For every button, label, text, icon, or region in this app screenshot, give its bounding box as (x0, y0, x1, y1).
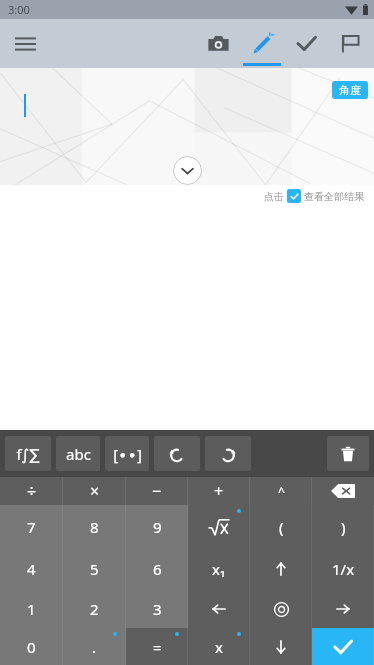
button[interactable]: Expand (173, 156, 202, 185)
staticText: 1/x (332, 559, 355, 579)
button[interactable]: Backspace (312, 477, 374, 505)
button[interactable]: Submit (312, 628, 374, 665)
button[interactable]: + (188, 477, 250, 505)
button[interactable]: Delete all (327, 436, 369, 471)
button[interactable]: 3 (126, 590, 188, 628)
staticText: 点击 (264, 190, 284, 203)
button[interactable]: 7 (0, 505, 63, 548)
button[interactable]: 2 (63, 590, 126, 628)
staticText: ÷ (27, 480, 37, 502)
staticText: 1 (27, 599, 36, 619)
button[interactable]: Up (250, 548, 312, 590)
button[interactable]: Undo (154, 436, 200, 471)
staticText: ^ (278, 483, 285, 499)
button[interactable]: abc (56, 436, 100, 471)
staticText: 7 (27, 517, 36, 537)
button[interactable]: Confirm (284, 19, 328, 68)
button[interactable]: Flag (328, 19, 372, 68)
staticText: [∙∙] (113, 444, 142, 464)
staticText: 4 (27, 559, 36, 579)
staticText: 查看全部结果 (304, 190, 364, 203)
staticText: 2 (90, 599, 99, 619)
button[interactable]: 0 (0, 628, 63, 665)
button[interactable]: 1 (0, 590, 63, 628)
button[interactable]: 1/x (312, 548, 374, 590)
button[interactable]: Menu (4, 23, 46, 65)
staticText: 9 (153, 517, 162, 537)
button[interactable]: f∫∑ (5, 436, 51, 471)
button[interactable]: ( (250, 505, 312, 548)
button[interactable]: = (126, 628, 188, 665)
staticText: 5 (90, 559, 99, 579)
button[interactable]: Down (250, 628, 312, 665)
button[interactable]: Redo (205, 436, 251, 471)
button[interactable]: ^ (250, 477, 312, 505)
staticText: = (153, 637, 162, 657)
button[interactable]: x₁ (188, 548, 250, 590)
staticText: 3:00 (8, 2, 30, 17)
staticText: f∫∑ (16, 444, 40, 464)
staticText: 6 (153, 559, 162, 579)
staticText: × (90, 480, 100, 502)
button[interactable]: x (188, 628, 250, 665)
button[interactable]: . (63, 628, 126, 665)
staticText: 角度 (339, 83, 361, 97)
button[interactable] (188, 505, 250, 548)
button[interactable]: × (63, 477, 126, 505)
staticText: 0 (27, 637, 36, 657)
button[interactable]: Draw (240, 19, 284, 68)
staticText: ( (279, 517, 284, 537)
staticText: x (215, 637, 223, 657)
staticText: − (152, 480, 162, 502)
button[interactable]: − (126, 477, 188, 505)
staticText: . (92, 637, 97, 657)
button[interactable]: 角度 (332, 81, 368, 99)
staticText: x₁ (212, 559, 226, 579)
button[interactable]: Camera (196, 19, 240, 68)
button[interactable]: ÷ (0, 477, 63, 505)
staticText: 3 (153, 599, 162, 619)
staticText: 8 (90, 517, 99, 537)
button[interactable]: ) (312, 505, 374, 548)
button[interactable]: 5 (63, 548, 126, 590)
staticText: + (214, 480, 224, 502)
button[interactable]: 6 (126, 548, 188, 590)
button[interactable]: Right (312, 590, 374, 628)
button[interactable]: 8 (63, 505, 126, 548)
button[interactable]: Cursor (250, 590, 312, 628)
button[interactable]: 4 (0, 548, 63, 590)
button[interactable]: 9 (126, 505, 188, 548)
button[interactable]: Left (188, 590, 250, 628)
staticText: abc (66, 444, 91, 464)
staticText: ) (341, 517, 346, 537)
button[interactable]: [∙∙] (105, 436, 149, 471)
